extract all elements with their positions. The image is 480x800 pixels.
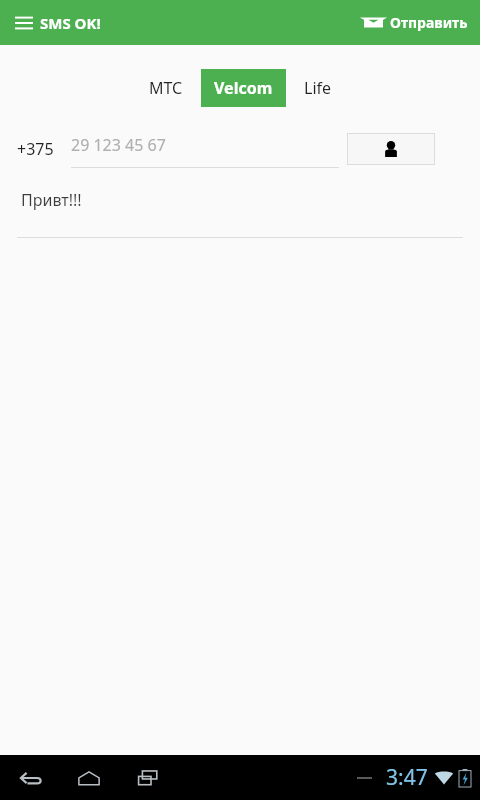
button[interactable]: Home — [72, 761, 106, 795]
button[interactable]: Recent apps — [131, 761, 165, 795]
button[interactable]: Life — [290, 68, 346, 108]
staticText: 3:47 — [386, 763, 428, 792]
button[interactable]: Choose contact — [347, 133, 435, 165]
staticText: МТС — [149, 77, 183, 99]
staticText: Отправить — [390, 13, 468, 32]
button[interactable]: Velcom — [201, 69, 286, 107]
button[interactable]: Menu — [8, 7, 40, 39]
button[interactable]: Привт!!! — [0, 189, 480, 238]
staticText: +375 — [17, 138, 54, 160]
button[interactable]: МТС — [135, 68, 197, 108]
staticText: Velcom — [214, 77, 273, 99]
button[interactable]: Отправить — [352, 0, 480, 45]
staticText: Привт!!! — [21, 189, 82, 211]
button[interactable]: Back — [14, 761, 48, 795]
staticText: 29 123 45 67 — [71, 134, 166, 156]
staticText: SMS OK! — [40, 13, 101, 33]
staticText: Life — [304, 77, 332, 99]
button[interactable]: 29 123 45 67 — [71, 130, 339, 168]
